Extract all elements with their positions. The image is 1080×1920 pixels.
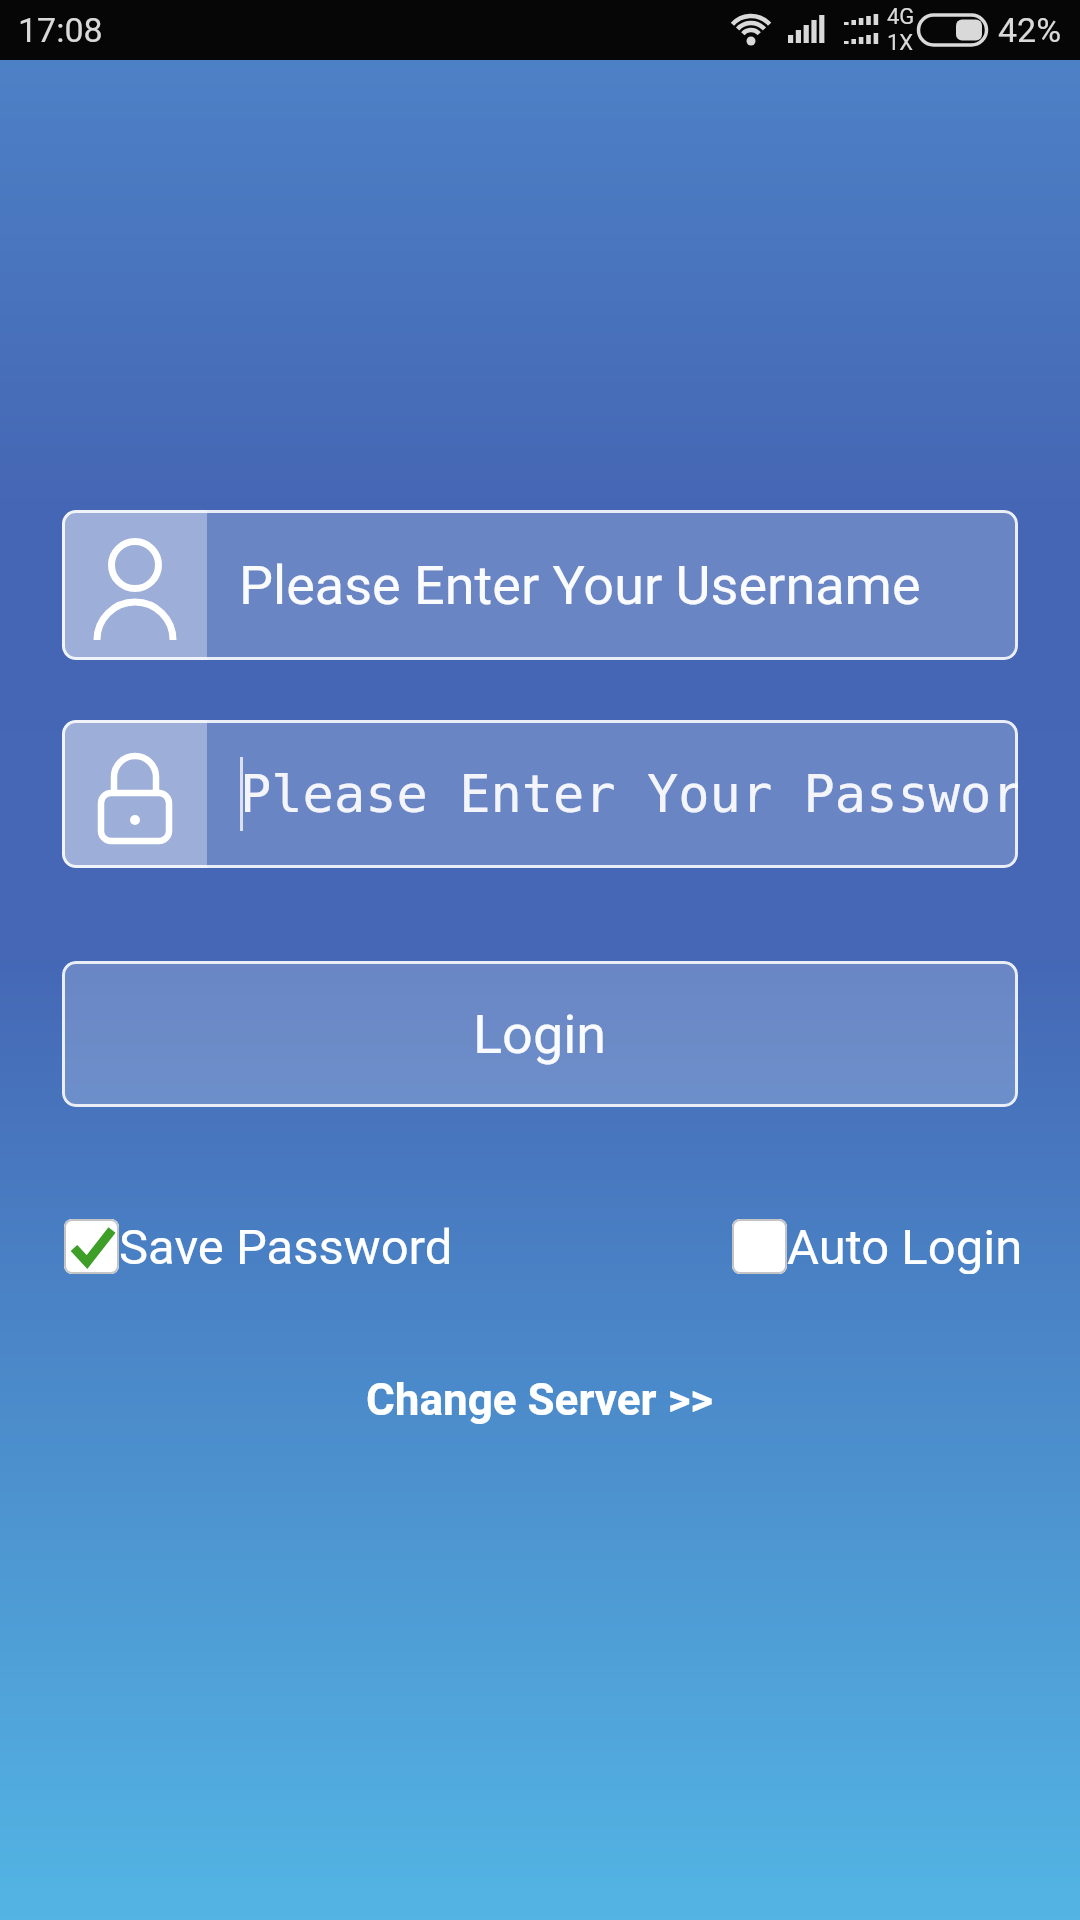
staticText: Please Enter Your Password [240, 764, 1018, 825]
staticText: Login [473, 1003, 607, 1066]
staticText: Save Password [119, 1219, 453, 1274]
staticText: 4G [887, 4, 915, 30]
staticText: 1X [887, 30, 914, 56]
staticText: 42% [998, 10, 1062, 50]
staticText: Please Enter Your Username [239, 554, 921, 617]
button[interactable]: Please Enter Your Password [62, 720, 1018, 868]
button[interactable]: Save Password [64, 1219, 453, 1274]
button[interactable]: Please Enter Your Username [62, 510, 1018, 660]
staticText: Auto Login [787, 1219, 1023, 1274]
button[interactable]: Login [62, 961, 1018, 1107]
button[interactable]: Change Server >> [366, 1374, 714, 1426]
button[interactable]: Auto Login [732, 1219, 1023, 1274]
staticText: 17:08 [18, 10, 103, 50]
